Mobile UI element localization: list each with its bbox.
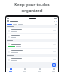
button[interactable] xyxy=(7,42,57,48)
button[interactable]: Selected tab xyxy=(7,24,12,25)
button[interactable]: Profile xyxy=(51,68,56,72)
button[interactable] xyxy=(7,57,57,62)
button[interactable] xyxy=(7,34,57,39)
button[interactable]: Tab xyxy=(13,24,17,25)
button[interactable] xyxy=(7,28,57,33)
button[interactable]: Lists xyxy=(37,68,42,72)
button[interactable] xyxy=(7,49,57,54)
button[interactable]: Tab xyxy=(18,24,23,25)
button[interactable]: Add task xyxy=(52,63,56,67)
staticText: Keep your to-dos organized xyxy=(3,2,61,13)
button[interactable]: Tasks xyxy=(8,68,13,72)
button[interactable]: Calendar xyxy=(22,68,27,72)
